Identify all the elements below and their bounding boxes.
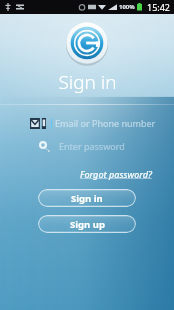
staticText: Sign in [71, 192, 103, 205]
staticText: 15:42 [147, 1, 171, 13]
button[interactable]: Enter password [0, 136, 174, 156]
button[interactable]: Sign in [38, 189, 136, 207]
other: App logo [64, 20, 110, 66]
staticText: Sign in [58, 69, 117, 95]
button[interactable]: Sign up [38, 215, 136, 233]
staticText: Sign up [70, 218, 105, 231]
staticText: 100% [119, 3, 135, 11]
staticText: Forgot password? [80, 168, 152, 180]
staticText: Email or Phone number [55, 117, 156, 129]
button[interactable]: Email or Phone number [0, 113, 174, 133]
staticText: Enter password [59, 140, 125, 152]
button[interactable]: Forgot password? [80, 166, 174, 182]
